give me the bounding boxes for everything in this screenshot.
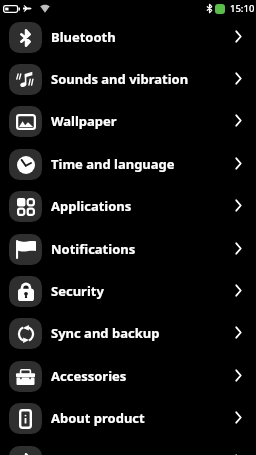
button[interactable]: About product bbox=[0, 397, 256, 439]
button[interactable]: Wallpaper bbox=[0, 100, 256, 142]
staticText: Accessories bbox=[51, 367, 127, 385]
staticText: Security bbox=[51, 282, 104, 300]
button[interactable]: Sync and backup bbox=[0, 312, 256, 354]
staticText: 15:10 bbox=[230, 2, 255, 15]
staticText: Sounds and vibration bbox=[51, 70, 189, 88]
staticText: Notifications bbox=[51, 240, 136, 258]
staticText: About product bbox=[51, 409, 145, 427]
button[interactable]: Time and language bbox=[0, 143, 256, 185]
button[interactable]: Security bbox=[0, 270, 256, 312]
staticText: Sync and backup bbox=[51, 324, 160, 342]
button[interactable]: Notifications bbox=[0, 228, 256, 270]
staticText: Applications bbox=[51, 197, 132, 215]
button[interactable]: Accessories bbox=[0, 355, 256, 397]
button[interactable]: Display bbox=[0, 440, 256, 455]
button[interactable]: Bluetooth bbox=[0, 16, 256, 58]
staticText: Wallpaper bbox=[51, 112, 117, 130]
button[interactable]: Applications bbox=[0, 185, 256, 227]
button[interactable]: Sounds and vibration bbox=[0, 58, 256, 100]
staticText: Time and language bbox=[51, 155, 175, 173]
staticText: Bluetooth bbox=[51, 28, 116, 46]
